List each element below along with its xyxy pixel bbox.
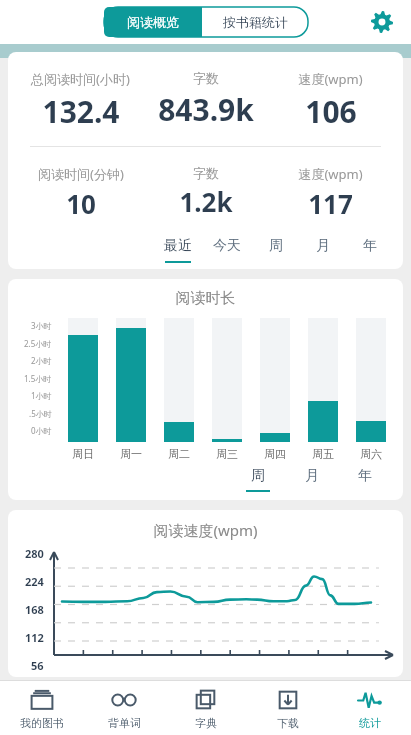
staticText: 阅读时间(分钟) bbox=[38, 165, 124, 183]
button[interactable]: 年 bbox=[351, 237, 389, 263]
staticText: 速度(wpm) bbox=[298, 70, 363, 88]
staticText: 年 bbox=[358, 467, 372, 485]
staticText: 今天 bbox=[213, 237, 241, 255]
staticText: 周二 bbox=[168, 447, 190, 461]
staticText: 阅读概览 bbox=[127, 14, 179, 30]
staticText: 下载 bbox=[277, 716, 299, 730]
staticText: 背单词 bbox=[108, 716, 141, 730]
staticText: 按书籍统计 bbox=[223, 14, 288, 30]
staticText: 速度(wpm) bbox=[298, 165, 363, 183]
staticText: 字数 bbox=[193, 70, 219, 86]
button[interactable]: 周 bbox=[238, 467, 278, 492]
button[interactable]: Settings bbox=[365, 5, 399, 39]
staticText: 280 bbox=[25, 546, 44, 561]
staticText: 112 bbox=[25, 630, 44, 645]
button[interactable]: 月 bbox=[292, 467, 332, 492]
staticText: 843.9k bbox=[158, 89, 254, 130]
button[interactable]: 按书籍统计 bbox=[202, 7, 308, 37]
staticText: 周 bbox=[269, 237, 283, 255]
button[interactable]: 字典 bbox=[165, 681, 247, 735]
staticText: 132.4 bbox=[42, 91, 120, 132]
staticText: 周日 bbox=[72, 447, 94, 461]
button[interactable]: 年 bbox=[345, 467, 385, 492]
button[interactable]: 周 bbox=[257, 237, 295, 263]
staticText: 统计 bbox=[359, 716, 381, 730]
staticText: 周一 bbox=[120, 447, 142, 461]
staticText: 字典 bbox=[195, 716, 217, 730]
staticText: 年 bbox=[363, 237, 377, 255]
button[interactable]: 我的图书 bbox=[0, 681, 83, 735]
staticText: 224 bbox=[25, 574, 44, 589]
button[interactable]: 今天 bbox=[207, 237, 247, 263]
staticText: 2小时 bbox=[31, 355, 52, 366]
staticText: 168 bbox=[25, 602, 44, 617]
staticText: 阅读速度(wpm) bbox=[8, 520, 403, 540]
staticText: 周六 bbox=[360, 447, 382, 461]
staticText: 1小时 bbox=[31, 390, 52, 401]
staticText: 周四 bbox=[264, 447, 286, 461]
staticText: 1.2k bbox=[179, 184, 233, 219]
staticText: 周 bbox=[251, 467, 265, 485]
staticText: 0小时 bbox=[31, 425, 52, 436]
staticText: 月 bbox=[316, 237, 330, 255]
button[interactable]: 阅读概览 bbox=[104, 7, 202, 37]
button[interactable]: 背单词 bbox=[83, 681, 165, 735]
staticText: .5小时 bbox=[29, 408, 52, 419]
button[interactable]: 最近 bbox=[158, 237, 198, 263]
staticText: 阅读时长 bbox=[8, 289, 403, 308]
button[interactable]: 统计 bbox=[329, 681, 411, 735]
button[interactable]: 月 bbox=[304, 237, 342, 263]
staticText: 56 bbox=[31, 658, 44, 671]
staticText: 周三 bbox=[216, 447, 238, 461]
staticText: 字数 bbox=[193, 165, 219, 181]
staticText: 2.5小时 bbox=[24, 338, 52, 349]
staticText: 106 bbox=[305, 91, 357, 132]
staticText: 周五 bbox=[312, 447, 334, 461]
staticText: 117 bbox=[308, 186, 353, 221]
staticText: 10 bbox=[66, 186, 96, 221]
staticText: 最近 bbox=[164, 237, 192, 255]
staticText: 3小时 bbox=[31, 320, 52, 331]
staticText: 我的图书 bbox=[20, 716, 64, 730]
staticText: 总阅读时间(小时) bbox=[31, 70, 130, 88]
button[interactable]: 下载 bbox=[247, 681, 329, 735]
staticText: 月 bbox=[305, 467, 319, 485]
staticText: 1.5小时 bbox=[24, 373, 52, 384]
